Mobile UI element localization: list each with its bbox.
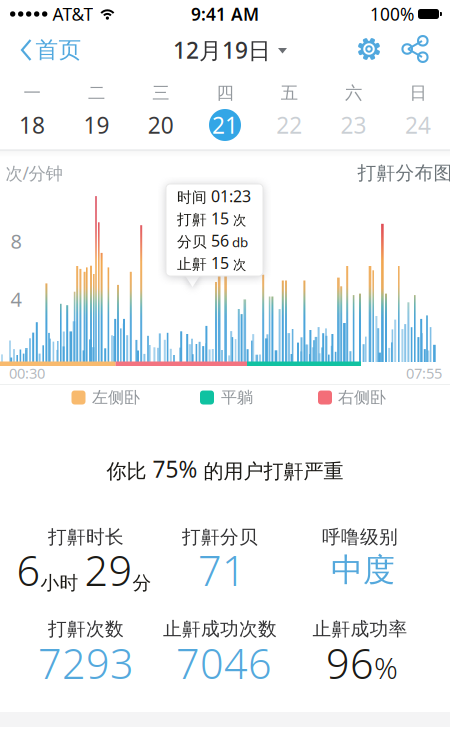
staticText: 9:41 AM: [191, 2, 259, 25]
staticText: 22: [276, 110, 302, 140]
staticText: 打鼾 15 次: [177, 208, 246, 229]
staticText: 96%: [326, 636, 398, 690]
staticText: 呼噜级别: [322, 525, 398, 548]
button[interactable]: 21: [207, 107, 243, 143]
button[interactable]: 首页: [20, 36, 81, 64]
staticText: 止鼾 15 次: [177, 252, 246, 273]
staticText: 00:30: [9, 363, 45, 383]
staticText: 四: [216, 82, 233, 104]
staticText: 07:55: [406, 363, 442, 383]
staticText: 4: [10, 286, 21, 312]
staticText: 7046: [176, 636, 272, 690]
staticText: 你比 75% 的用户打鼾严重: [106, 454, 343, 484]
staticText: 左侧卧: [92, 388, 140, 407]
button[interactable]: Settings: [357, 37, 381, 61]
staticText: 首页: [35, 36, 81, 64]
staticText: 二: [88, 82, 105, 104]
staticText: 23: [341, 110, 367, 140]
staticText: 100%: [370, 2, 414, 25]
staticText: 8: [10, 228, 21, 254]
staticText: 打鼾次数: [48, 617, 124, 640]
staticText: 打鼾分布图: [357, 161, 450, 184]
staticText: 打鼾分贝: [182, 525, 258, 548]
staticText: 六: [345, 82, 362, 104]
staticText: 打鼾时长: [48, 525, 124, 548]
staticText: 7293: [38, 636, 134, 690]
staticText: 平躺: [221, 388, 253, 407]
staticText: 日: [409, 82, 426, 104]
button[interactable]: 20: [143, 107, 179, 143]
button[interactable]: 24: [400, 107, 436, 143]
button[interactable]: 18: [14, 107, 50, 143]
staticText: 一: [24, 82, 41, 104]
staticText: 止鼾成功率: [312, 617, 407, 640]
staticText: 19: [83, 110, 109, 140]
button[interactable]: 19: [78, 107, 114, 143]
staticText: 右侧卧: [338, 388, 386, 407]
staticText: 18: [19, 110, 45, 140]
staticText: 20: [148, 110, 174, 140]
staticText: 五: [281, 82, 298, 104]
staticText: 中度: [331, 550, 395, 590]
staticText: 24: [405, 110, 431, 140]
button[interactable]: 22: [271, 107, 307, 143]
staticText: 次/分钟: [5, 161, 62, 184]
staticText: 6小时 29分: [16, 543, 151, 597]
staticText: AT&T: [52, 2, 93, 25]
staticText: 分贝 56 db: [177, 230, 248, 251]
button[interactable]: Share: [402, 36, 428, 62]
button[interactable]: 12月19日: [173, 35, 287, 65]
staticText: 21: [212, 110, 238, 140]
staticText: 时间 01:23: [177, 185, 251, 207]
staticText: 12月19日: [173, 35, 271, 65]
staticText: 三: [152, 82, 169, 104]
button[interactable]: 23: [336, 107, 372, 143]
staticText: 止鼾成功次数: [163, 617, 277, 640]
staticText: 71: [198, 543, 246, 597]
